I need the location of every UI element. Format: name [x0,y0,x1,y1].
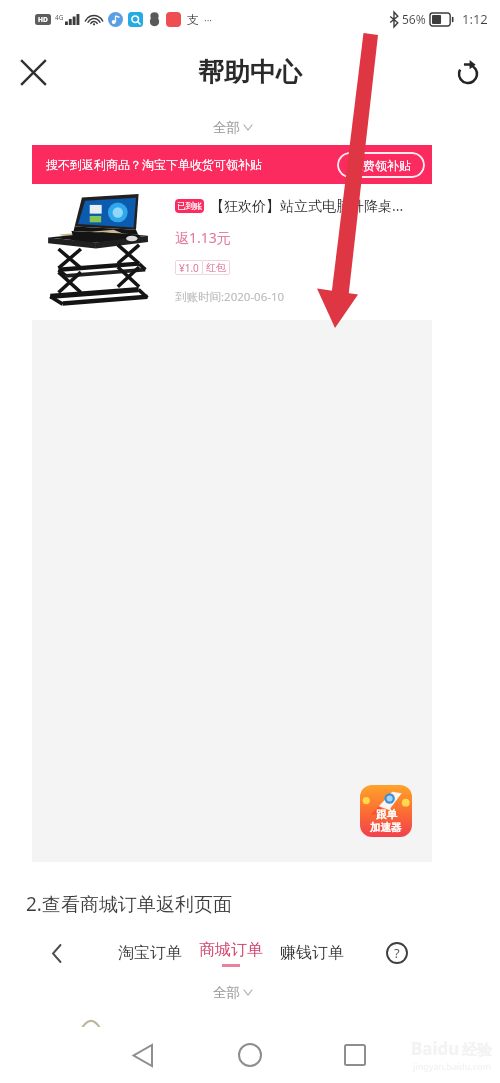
staticText: 红包 [206,261,226,274]
staticText: 搜不到返利商品？淘宝下单收货可领补贴 [46,157,262,172]
staticText: 到账时间:2020-06-10 [175,289,285,305]
staticText: 全部 [213,984,240,1001]
staticText: 4G [55,13,64,22]
staticText: 1:12 [462,10,488,28]
button[interactable]: Close [14,53,52,91]
button[interactable]: Home [226,1031,274,1079]
button[interactable]: 跟单加速器 [360,785,412,837]
button[interactable]: Help [380,936,414,970]
button[interactable]: 全部 [207,115,258,140]
staticText: 跟单 [376,808,397,821]
staticText: 返1.13元 [175,228,231,247]
staticText: 【狂欢价】站立式电脑升降桌... [210,196,404,215]
staticText: 加速器 [370,821,402,834]
button[interactable]: 免费领补贴 [337,152,425,178]
staticText: 2.查看商城订单返利页面 [26,891,232,917]
button[interactable]: Refresh [448,52,488,92]
button[interactable]: 商城订单 [196,938,266,969]
button[interactable]: 搜不到返利商品？淘宝下单收货可领补贴 [32,145,432,184]
staticText: Baidu [411,1037,460,1060]
staticText: 全部 [213,119,240,136]
button[interactable]: 淘宝订单 [115,937,185,969]
staticText: ? [394,944,400,962]
button[interactable]: Back [119,1031,167,1079]
staticText: 支 [187,12,199,27]
staticText: ··· [204,13,213,27]
button[interactable]: Back [40,936,74,970]
staticText: 56% [402,11,426,27]
staticText: 淘宝订单 [118,943,182,963]
button[interactable]: 全部 [207,980,258,1005]
button[interactable]: Recents [331,1031,379,1079]
staticText: 已到账 [177,201,203,212]
staticText: 经验 [462,1041,492,1060]
staticText: ¥1.0 [179,261,199,275]
staticText: 赚钱订单 [280,943,344,963]
button[interactable]: 赚钱订单 [277,937,347,969]
staticText: jingyan.baidu.com [413,1060,491,1072]
staticText: 帮助中心 [198,56,302,89]
staticText: 免费领补贴 [351,158,411,173]
staticText: 商城订单 [199,940,263,960]
staticText: HD [38,15,48,24]
